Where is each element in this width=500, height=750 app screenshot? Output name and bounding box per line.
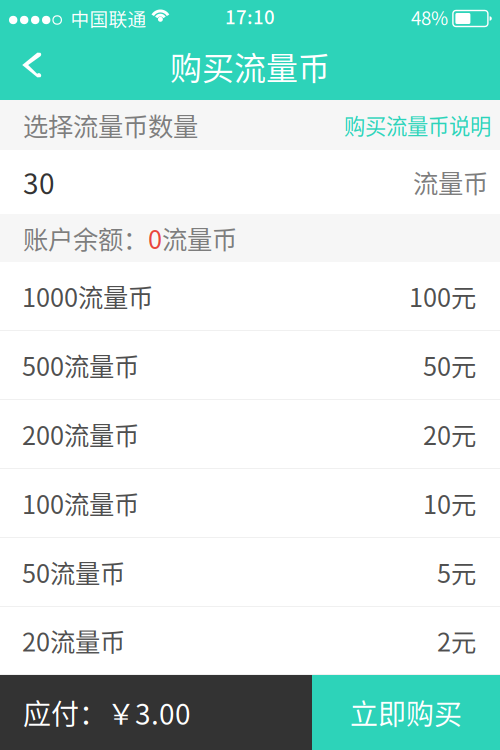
staticText: 5元: [437, 554, 476, 590]
staticText: 中国联通: [70, 4, 146, 31]
staticText: 50元: [423, 347, 476, 383]
staticText: 50流量币: [22, 554, 125, 590]
button[interactable]: Back: [0, 40, 58, 100]
staticText: 0: [148, 220, 162, 256]
staticText: 流量币: [162, 220, 237, 256]
staticText: 100元: [409, 278, 476, 314]
staticText: 200流量币: [22, 416, 139, 452]
button[interactable]: 购买流量币说明: [344, 110, 491, 140]
button[interactable]: 立即购买: [312, 675, 500, 750]
staticText: 购买流量币说明: [344, 110, 491, 140]
staticText: 48%: [411, 3, 448, 30]
staticText: 1000流量币: [22, 278, 153, 314]
staticText: 立即购买: [350, 692, 462, 733]
staticText: 20元: [423, 416, 476, 452]
staticText: 100流量币: [22, 485, 139, 521]
staticText: 购买流量币: [170, 43, 330, 89]
staticText: 2元: [437, 622, 476, 659]
button[interactable]: 20流量币: [0, 607, 500, 675]
staticText: 20流量币: [22, 622, 125, 659]
staticText: 17:10: [225, 2, 275, 29]
staticText: 账户余额：: [23, 220, 148, 256]
staticText: 应付：￥3.00: [23, 692, 191, 733]
staticText: 10元: [423, 485, 476, 521]
staticText: 选择流量币数量: [23, 107, 198, 143]
button[interactable]: 100流量币: [0, 469, 500, 538]
staticText: 30: [23, 162, 55, 202]
button[interactable]: 200流量币: [0, 400, 500, 469]
staticText: 500流量币: [22, 347, 139, 383]
staticText: 流量币: [413, 164, 488, 200]
button[interactable]: 1000流量币: [0, 262, 500, 331]
button[interactable]: 500流量币: [0, 331, 500, 400]
button[interactable]: 50流量币: [0, 538, 500, 607]
